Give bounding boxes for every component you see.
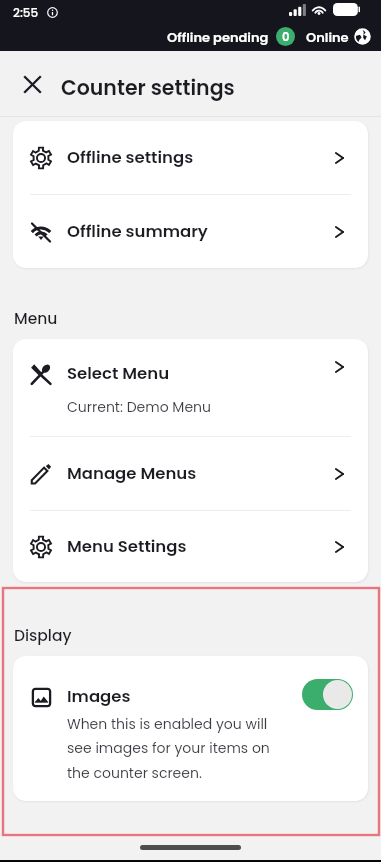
- button[interactable]: Menu Settings: [13, 511, 368, 582]
- button[interactable]: Select Menu: [13, 339, 368, 436]
- button[interactable]: Close: [10, 62, 54, 106]
- button[interactable]: Images toggle: [302, 679, 353, 710]
- button[interactable]: Offline settings: [13, 121, 368, 194]
- staticText: Manage Menus: [67, 462, 197, 485]
- staticText: Counter settings: [61, 73, 235, 102]
- staticText: Current: Demo Menu: [67, 397, 212, 417]
- staticText: Menu: [14, 308, 58, 330]
- staticText: Menu Settings: [67, 535, 187, 558]
- staticText: Select Menu: [67, 362, 170, 385]
- staticText: Online: [306, 28, 349, 46]
- staticText: Display: [14, 625, 72, 647]
- staticText: Offline settings: [67, 146, 194, 169]
- staticText: When this is enabled you will see images…: [67, 714, 282, 783]
- staticText: 0: [282, 29, 290, 45]
- button[interactable]: Images: [13, 656, 368, 801]
- staticText: 2:55: [13, 4, 39, 21]
- staticText: Offline summary: [67, 220, 208, 243]
- staticText: Offline pending: [167, 28, 269, 46]
- button[interactable]: Manage Menus: [13, 437, 368, 510]
- staticText: Images: [67, 685, 131, 708]
- button[interactable]: Offline summary: [13, 195, 368, 268]
